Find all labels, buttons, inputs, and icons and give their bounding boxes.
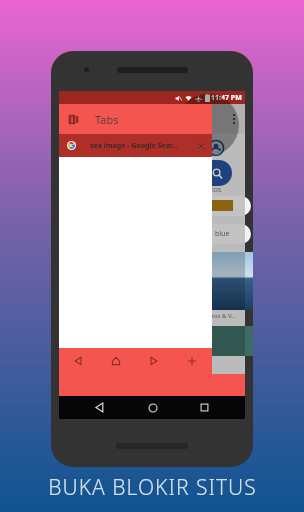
button[interactable]: Recents <box>193 396 216 419</box>
staticText: VIDEOS <box>200 186 222 194</box>
button[interactable]: Close tab <box>192 137 210 155</box>
button[interactable]: sea image - Google Sear... <box>59 134 212 157</box>
staticText: sea image - Google Sear... <box>90 141 178 151</box>
staticText: 11:47 PM <box>211 93 242 103</box>
button[interactable]: More options <box>223 104 245 134</box>
button[interactable]: Back <box>88 396 111 419</box>
button[interactable]: Home <box>97 348 135 374</box>
staticText: BUKA BLOKIR SITUS <box>48 473 257 502</box>
staticText: blue <box>215 229 230 239</box>
staticText: …tos & V… <box>207 312 236 320</box>
button[interactable]: Back <box>59 348 97 374</box>
staticText: Tabs <box>95 112 119 127</box>
button[interactable]: Forward <box>135 348 173 374</box>
button[interactable]: New tab <box>173 348 211 374</box>
button[interactable]: Tabs <box>59 104 212 134</box>
button[interactable]: Home <box>141 396 164 419</box>
